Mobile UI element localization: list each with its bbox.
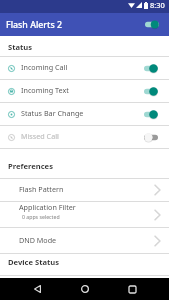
staticText: Application Filter — [19, 202, 76, 212]
staticText: Incoming Call — [21, 62, 68, 72]
button[interactable]: Recent apps — [121, 278, 143, 300]
button[interactable]: DND Mode — [0, 228, 169, 254]
button[interactable]: Enable flash alerts — [139, 16, 169, 33]
staticText: 0 apps selected — [22, 213, 60, 220]
button[interactable]: Application Filter — [0, 202, 169, 228]
staticText: Missed Call — [21, 131, 59, 141]
staticText: 8:30 — [150, 0, 165, 10]
button[interactable]: Back — [26, 278, 48, 300]
button[interactable]: Incoming Call — [0, 57, 169, 80]
staticText: Device Status — [8, 257, 60, 267]
staticText: Incoming Text — [21, 85, 69, 95]
button[interactable]: Missed Call — [0, 126, 169, 149]
staticText: Flash Pattern — [19, 184, 64, 194]
staticText: Status — [8, 42, 33, 52]
button[interactable]: Incoming Text — [0, 80, 169, 103]
staticText: Status Bar Change — [21, 108, 84, 118]
button[interactable]: Home — [74, 278, 96, 300]
button[interactable]: Flash Pattern — [0, 179, 169, 202]
staticText: Flash Alerts 2 — [6, 19, 63, 31]
staticText: DND Mode — [19, 235, 57, 245]
staticText: Preferences — [8, 161, 53, 171]
button[interactable]: Status Bar Change — [0, 103, 169, 126]
